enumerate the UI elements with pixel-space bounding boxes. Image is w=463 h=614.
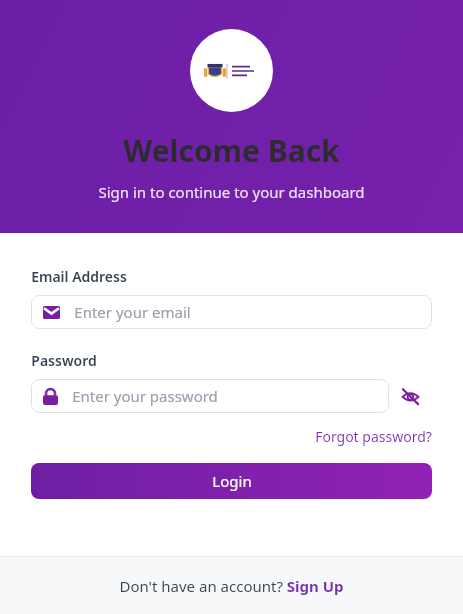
staticText: Login: [212, 471, 252, 491]
staticText: Password: [31, 351, 97, 370]
other: Password: [43, 388, 58, 405]
staticText: Sign in to continue to your dashboard: [98, 182, 365, 202]
button[interactable]: Email: [31, 295, 432, 329]
button[interactable]: Show password: [389, 379, 432, 413]
button[interactable]: Password: [31, 379, 389, 413]
staticText: Enter your email: [74, 302, 191, 322]
staticText: Enter your password: [72, 386, 218, 406]
button[interactable]: Don't have an account? Sign Up: [119, 576, 344, 596]
other: Email: [43, 306, 60, 319]
staticText: Welcome Back: [123, 130, 340, 171]
button[interactable]: Login: [31, 463, 432, 499]
staticText: Forgot password?: [315, 427, 432, 446]
staticText: Don't have an account? Sign Up: [119, 576, 344, 596]
button[interactable]: Forgot password?: [315, 427, 432, 446]
staticText: Email Address: [31, 267, 127, 286]
